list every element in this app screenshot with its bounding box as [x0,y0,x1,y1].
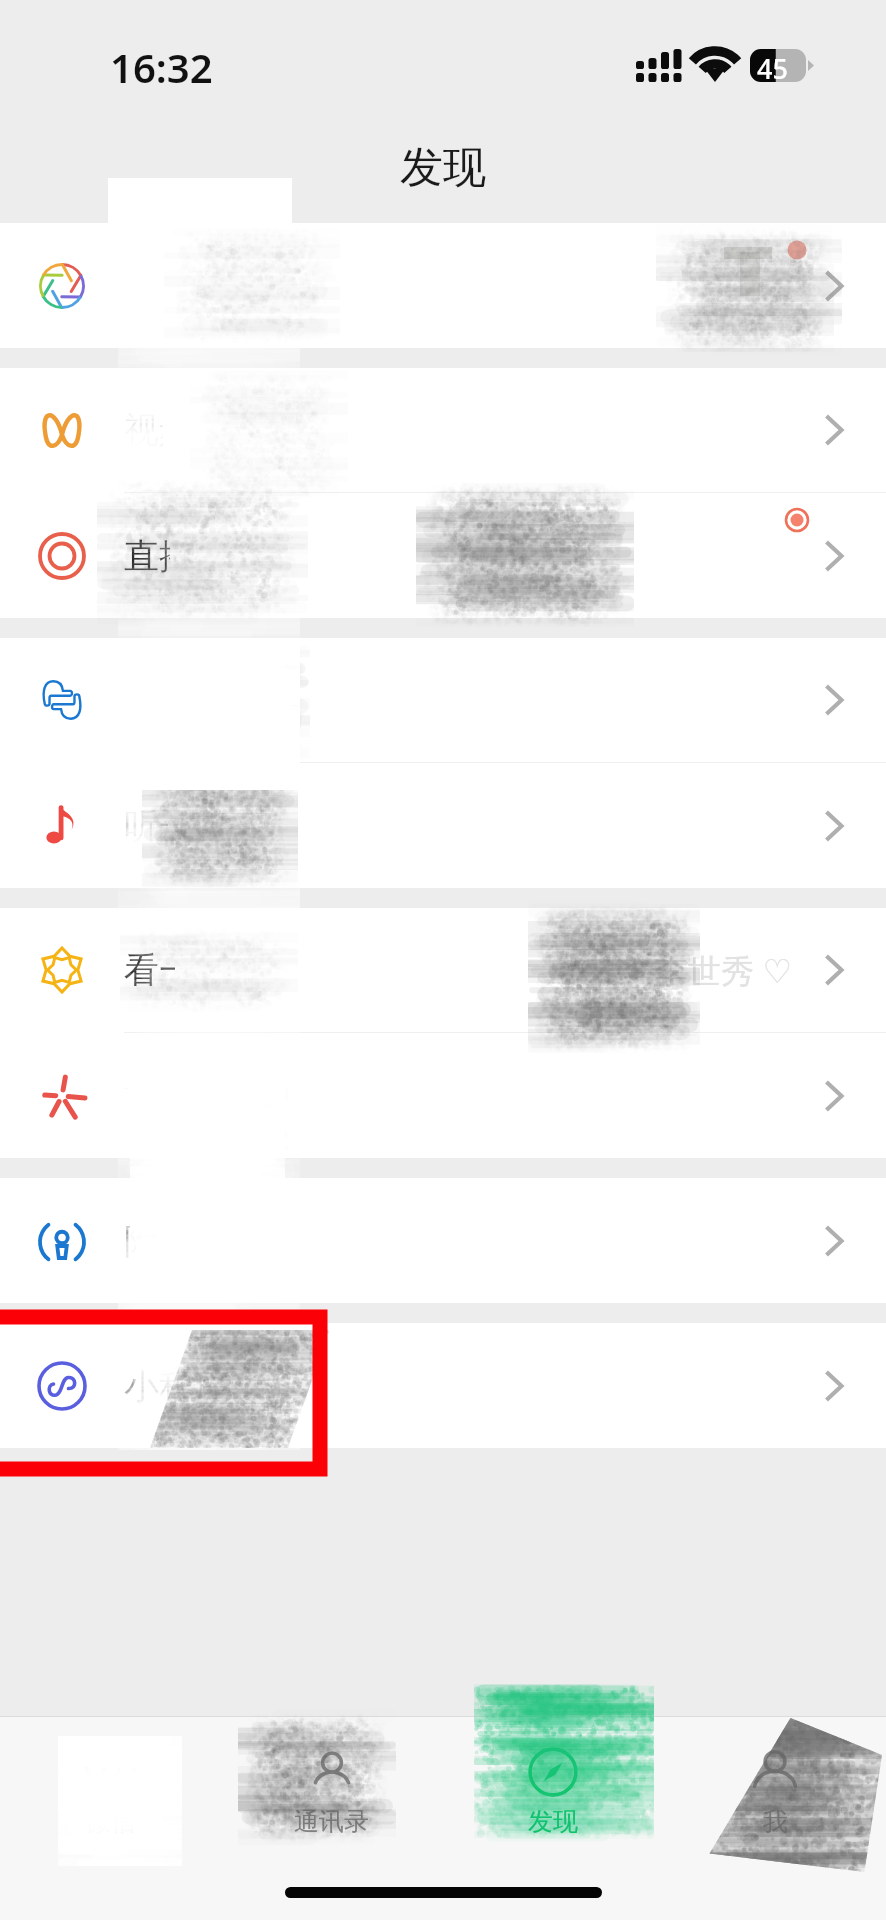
button[interactable]: 直播 [0,493,886,618]
button[interactable]: 微信 [0,1717,221,1865]
staticText: 通讯录 [294,1806,369,1837]
staticText: 发现 [528,1806,578,1837]
button[interactable]: 听一听 [0,763,886,888]
button[interactable]: 搜一搜 [0,1033,886,1158]
staticText: 45 [757,50,788,87]
staticText: 附近 [124,1219,194,1263]
staticText: 16:32 [110,40,213,94]
staticText: 直播 [124,534,194,578]
button[interactable]: 看一看 [0,908,886,1033]
button[interactable]: 朋友圈 [0,223,886,348]
staticText: 李世秀 ♡ [655,948,793,993]
staticText: 听一听 [124,804,229,848]
staticText: 我 [763,1806,788,1837]
button[interactable]: 通讯录 [221,1717,442,1865]
button[interactable]: 附近 [0,1178,886,1303]
button[interactable]: 小程序 [0,1323,886,1448]
button[interactable]: 我 [664,1717,886,1865]
button[interactable]: 扫一扫 [0,638,886,763]
staticText: 发现 [400,141,486,195]
button[interactable]: 视频号 [0,368,886,493]
staticText: 小程序 [124,1364,229,1408]
staticText: 朋友圈 [124,264,229,308]
staticText: 看一看 [124,948,229,992]
button[interactable]: 发现 [442,1717,664,1865]
